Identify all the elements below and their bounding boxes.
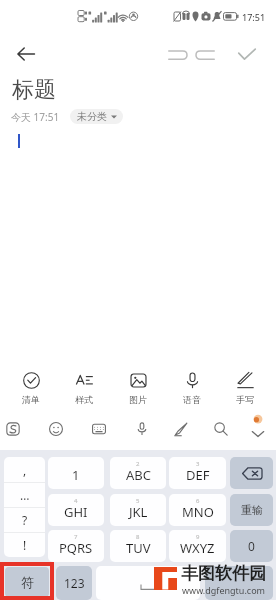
button[interactable]: 语音 xyxy=(169,368,215,405)
button[interactable]: GHI xyxy=(48,494,104,526)
button[interactable]: Enter xyxy=(205,566,273,600)
button[interactable]: Search xyxy=(208,416,234,442)
staticText: 17:51 xyxy=(242,11,266,23)
button[interactable]: Space xyxy=(96,566,200,600)
button[interactable]: 样式 xyxy=(61,368,107,405)
button[interactable]: MNO xyxy=(169,494,226,526)
button[interactable]: Back xyxy=(11,39,41,69)
button[interactable]: Collapse keyboard xyxy=(245,416,271,442)
staticText: WXYZ xyxy=(180,539,215,557)
button[interactable]: ! xyxy=(4,533,45,557)
button[interactable]: Redo xyxy=(190,40,220,70)
button[interactable]: Voice input xyxy=(129,416,155,442)
button[interactable]: Keyboard xyxy=(86,416,112,442)
button[interactable]: Sogou input xyxy=(0,416,26,442)
button[interactable]: ? xyxy=(4,508,45,532)
staticText: 7 xyxy=(74,533,78,541)
staticText: 5 xyxy=(136,497,140,505)
staticText: 今天 17:51 xyxy=(11,110,60,124)
button[interactable]: … xyxy=(4,483,45,507)
staticText: ? xyxy=(22,512,28,528)
button[interactable]: 符 xyxy=(5,567,49,597)
button[interactable]: 手写 xyxy=(222,368,268,405)
staticText: JKL xyxy=(129,503,148,521)
button[interactable]: WXYZ xyxy=(169,530,226,562)
staticText: 语音 xyxy=(183,394,201,405)
staticText: MNO xyxy=(182,503,214,521)
staticText: PQRS xyxy=(59,539,93,557)
button[interactable]: Done xyxy=(232,39,262,69)
staticText: … xyxy=(20,487,30,503)
staticText: TUV xyxy=(126,539,151,557)
button[interactable]: PQRS xyxy=(48,530,104,562)
staticText: 9 xyxy=(196,533,200,541)
staticText: 8 xyxy=(136,533,140,541)
staticText: 3 xyxy=(196,460,200,468)
staticText: 重输 xyxy=(241,503,263,517)
button[interactable]: JKL xyxy=(110,494,166,526)
staticText: www.dgfengtu.com xyxy=(182,584,266,596)
button[interactable]: 未分类 xyxy=(70,109,123,124)
button[interactable]: TUV xyxy=(110,530,166,562)
button[interactable]: , xyxy=(4,457,45,482)
button[interactable]: Undo xyxy=(162,40,192,70)
button[interactable]: 清单 xyxy=(8,368,54,405)
staticText: 样式 xyxy=(75,394,93,405)
staticText: GHI xyxy=(64,503,88,521)
staticText: 4 xyxy=(74,497,78,505)
staticText: 标题 xyxy=(12,76,56,104)
button[interactable]: ABC xyxy=(110,457,166,489)
staticText: 未分类 xyxy=(77,110,107,123)
staticText: , xyxy=(23,462,27,478)
button[interactable]: Handwriting xyxy=(168,416,194,442)
staticText: 清单 xyxy=(22,394,40,405)
button[interactable]: 1 xyxy=(48,457,104,489)
staticText: ! xyxy=(23,537,27,553)
staticText: 123 xyxy=(64,575,85,591)
staticText: 图片 xyxy=(129,394,147,405)
button[interactable]: Emoji xyxy=(43,416,69,442)
staticText: DEF xyxy=(186,466,210,484)
button[interactable]: Delete xyxy=(230,457,273,489)
button[interactable]: Re-enter xyxy=(230,494,273,526)
staticText: 6 xyxy=(196,497,200,505)
button[interactable]: 0 xyxy=(230,530,273,562)
staticText: 丰图软件园 xyxy=(181,563,266,584)
staticText: 1 xyxy=(72,466,80,484)
button[interactable]: 123 xyxy=(56,566,92,600)
staticText: 符 xyxy=(21,574,34,590)
staticText: 0 xyxy=(248,538,255,554)
button[interactable]: 图片 xyxy=(115,368,161,405)
staticText: 手写 xyxy=(236,394,254,405)
staticText: 2 xyxy=(136,460,140,468)
button[interactable]: DEF xyxy=(169,457,226,489)
staticText: ABC xyxy=(126,466,151,484)
